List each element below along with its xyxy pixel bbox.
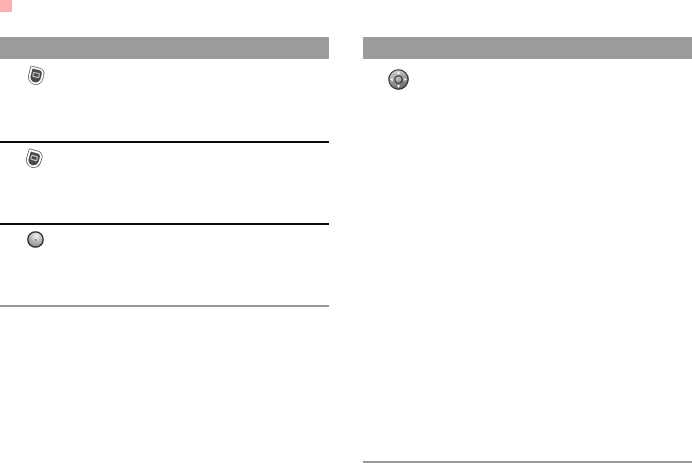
other: Navigate <box>388 69 409 90</box>
other: Place <box>25 65 47 87</box>
button[interactable]: Place <box>0 59 329 141</box>
button[interactable]: Sphere <box>0 225 329 305</box>
other: Sphere <box>27 231 44 248</box>
other: Place <box>23 148 45 170</box>
button[interactable]: Place <box>0 143 329 223</box>
button[interactable]: Navigate <box>363 59 692 119</box>
